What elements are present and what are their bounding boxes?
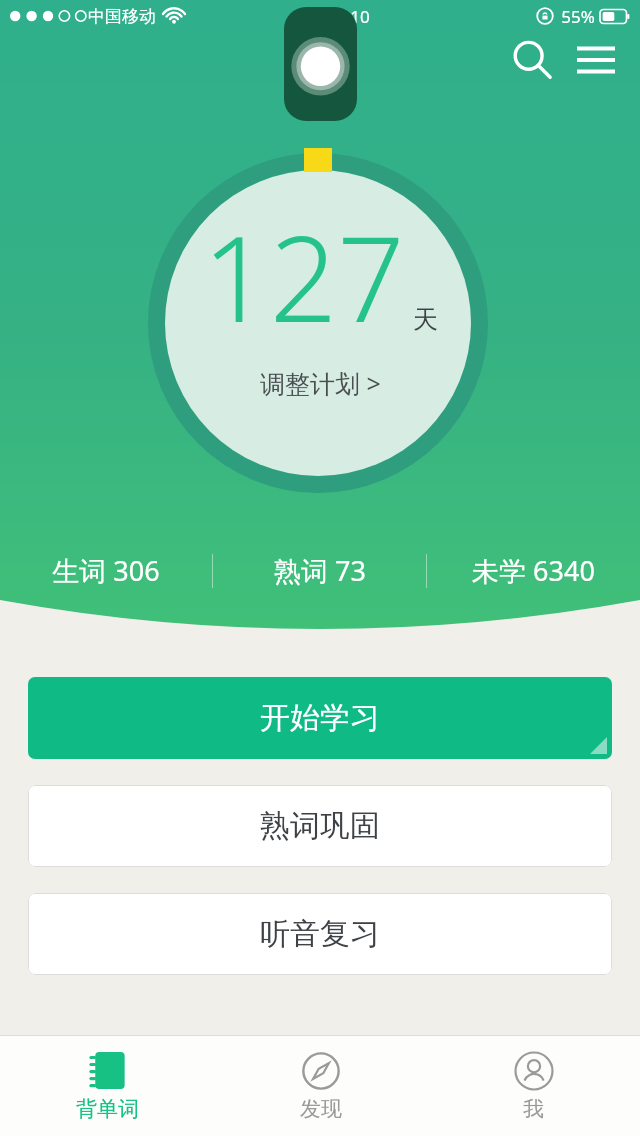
button[interactable]: 熟词 73 (213, 543, 426, 598)
button[interactable]: 开始学习 (28, 677, 612, 759)
button[interactable]: 发现 (214, 1036, 427, 1136)
button[interactable]: 未学 6340 (427, 543, 640, 598)
staticText: 发现 (300, 1096, 342, 1122)
staticText: 我 (523, 1096, 544, 1122)
button[interactable]: Assistive touch (284, 7, 357, 121)
button[interactable]: 调整计划 > (246, 361, 395, 405)
staticText: 55% (561, 5, 595, 28)
staticText: 未学 6340 (472, 552, 595, 589)
staticText: 10 (350, 5, 370, 28)
button[interactable]: 我 (427, 1036, 640, 1136)
staticText: 127 (202, 196, 405, 357)
button[interactable]: 背单词 (0, 1036, 214, 1136)
staticText: 开始学习 (260, 699, 380, 737)
button[interactable]: 熟词巩固 (28, 785, 612, 867)
staticText: 调整计划 > (260, 366, 381, 400)
staticText: 生词 306 (52, 552, 160, 589)
staticText: 听音复习 (260, 915, 380, 953)
button[interactable]: 生词 306 (0, 543, 212, 598)
staticText: 中国移动 (88, 6, 156, 27)
staticText: 天 (413, 304, 438, 335)
button[interactable]: Search (500, 28, 564, 92)
staticText: 熟词 73 (274, 552, 366, 589)
staticText: 熟词巩固 (260, 807, 380, 845)
staticText: 背单词 (76, 1096, 139, 1122)
button[interactable]: Menu (564, 28, 628, 92)
button[interactable]: 听音复习 (28, 893, 612, 975)
